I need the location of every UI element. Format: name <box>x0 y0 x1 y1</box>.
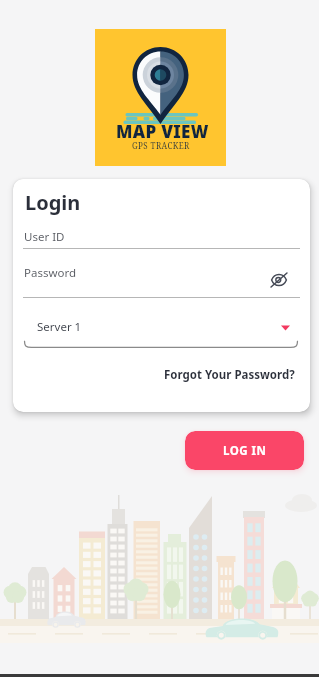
button[interactable]: Show password <box>268 269 290 291</box>
staticText: Password <box>24 265 77 281</box>
staticText: Login <box>25 189 81 216</box>
button[interactable]: LOG IN <box>185 431 304 470</box>
staticText: Forgot Your Password? <box>164 367 295 383</box>
staticText: GPS TRACKER <box>132 140 190 151</box>
button[interactable]: Server 1 <box>24 310 298 348</box>
staticText: LOG IN <box>223 443 267 459</box>
staticText: MAP VIEW <box>116 120 209 143</box>
staticText: Server 1 <box>37 319 82 335</box>
button[interactable]: Forgot Your Password? <box>161 364 298 386</box>
staticText: User ID <box>24 229 65 245</box>
